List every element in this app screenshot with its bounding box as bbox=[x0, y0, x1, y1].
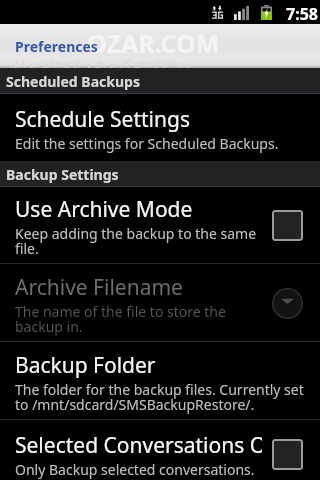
staticText: Use Archive Mode bbox=[15, 195, 193, 224]
button[interactable]: Open list bbox=[272, 288, 303, 319]
button[interactable]: Checkbox bbox=[272, 210, 303, 241]
staticText: Backup Settings bbox=[6, 165, 119, 184]
staticText: Scheduled Backups bbox=[6, 72, 140, 91]
button[interactable]: Archive Filename bbox=[0, 264, 320, 342]
staticText: The name of the file to store the backup… bbox=[15, 302, 262, 336]
staticText: نرم افزارهای کاربردی و بازی های موبایل bbox=[10, 55, 193, 70]
staticText: Keep adding the backup to the same file. bbox=[15, 224, 262, 258]
staticText: 7:58 bbox=[286, 3, 318, 25]
staticText: Archive Filename bbox=[15, 273, 183, 302]
staticText: Backup Folder bbox=[15, 351, 156, 380]
button[interactable]: Schedule Settings bbox=[0, 94, 320, 161]
staticText: OZAR.COM bbox=[87, 26, 220, 60]
staticText: Only Backup selected conversations. bbox=[15, 460, 255, 479]
button[interactable]: Use Archive Mode bbox=[0, 187, 320, 264]
button[interactable]: Checkbox bbox=[272, 439, 303, 470]
button[interactable]: Selected Conversations Only bbox=[0, 420, 320, 480]
staticText: Edit the settings for Scheduled Backups. bbox=[15, 134, 279, 153]
button[interactable]: Backup Folder bbox=[0, 342, 320, 420]
staticText: Schedule Settings bbox=[15, 105, 190, 134]
staticText: The folder for the backup files. Current… bbox=[15, 380, 305, 414]
staticText: Selected Conversations Only bbox=[15, 431, 262, 460]
staticText: Preferences bbox=[15, 37, 98, 56]
